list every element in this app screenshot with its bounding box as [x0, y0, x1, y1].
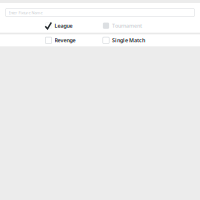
button[interactable]: Revenge — [45, 37, 75, 44]
button[interactable]: Enter Fixture Name — [5, 8, 194, 17]
button[interactable]: Single Match — [102, 37, 145, 44]
staticText: Enter Fixture Name — [8, 10, 42, 15]
staticText: Revenge — [54, 37, 75, 44]
staticText: Single Match — [112, 37, 145, 44]
staticText: League — [54, 22, 72, 29]
button[interactable]: Tournament — [102, 22, 142, 29]
staticText: Tournament — [112, 22, 142, 29]
button[interactable]: League — [45, 22, 72, 29]
